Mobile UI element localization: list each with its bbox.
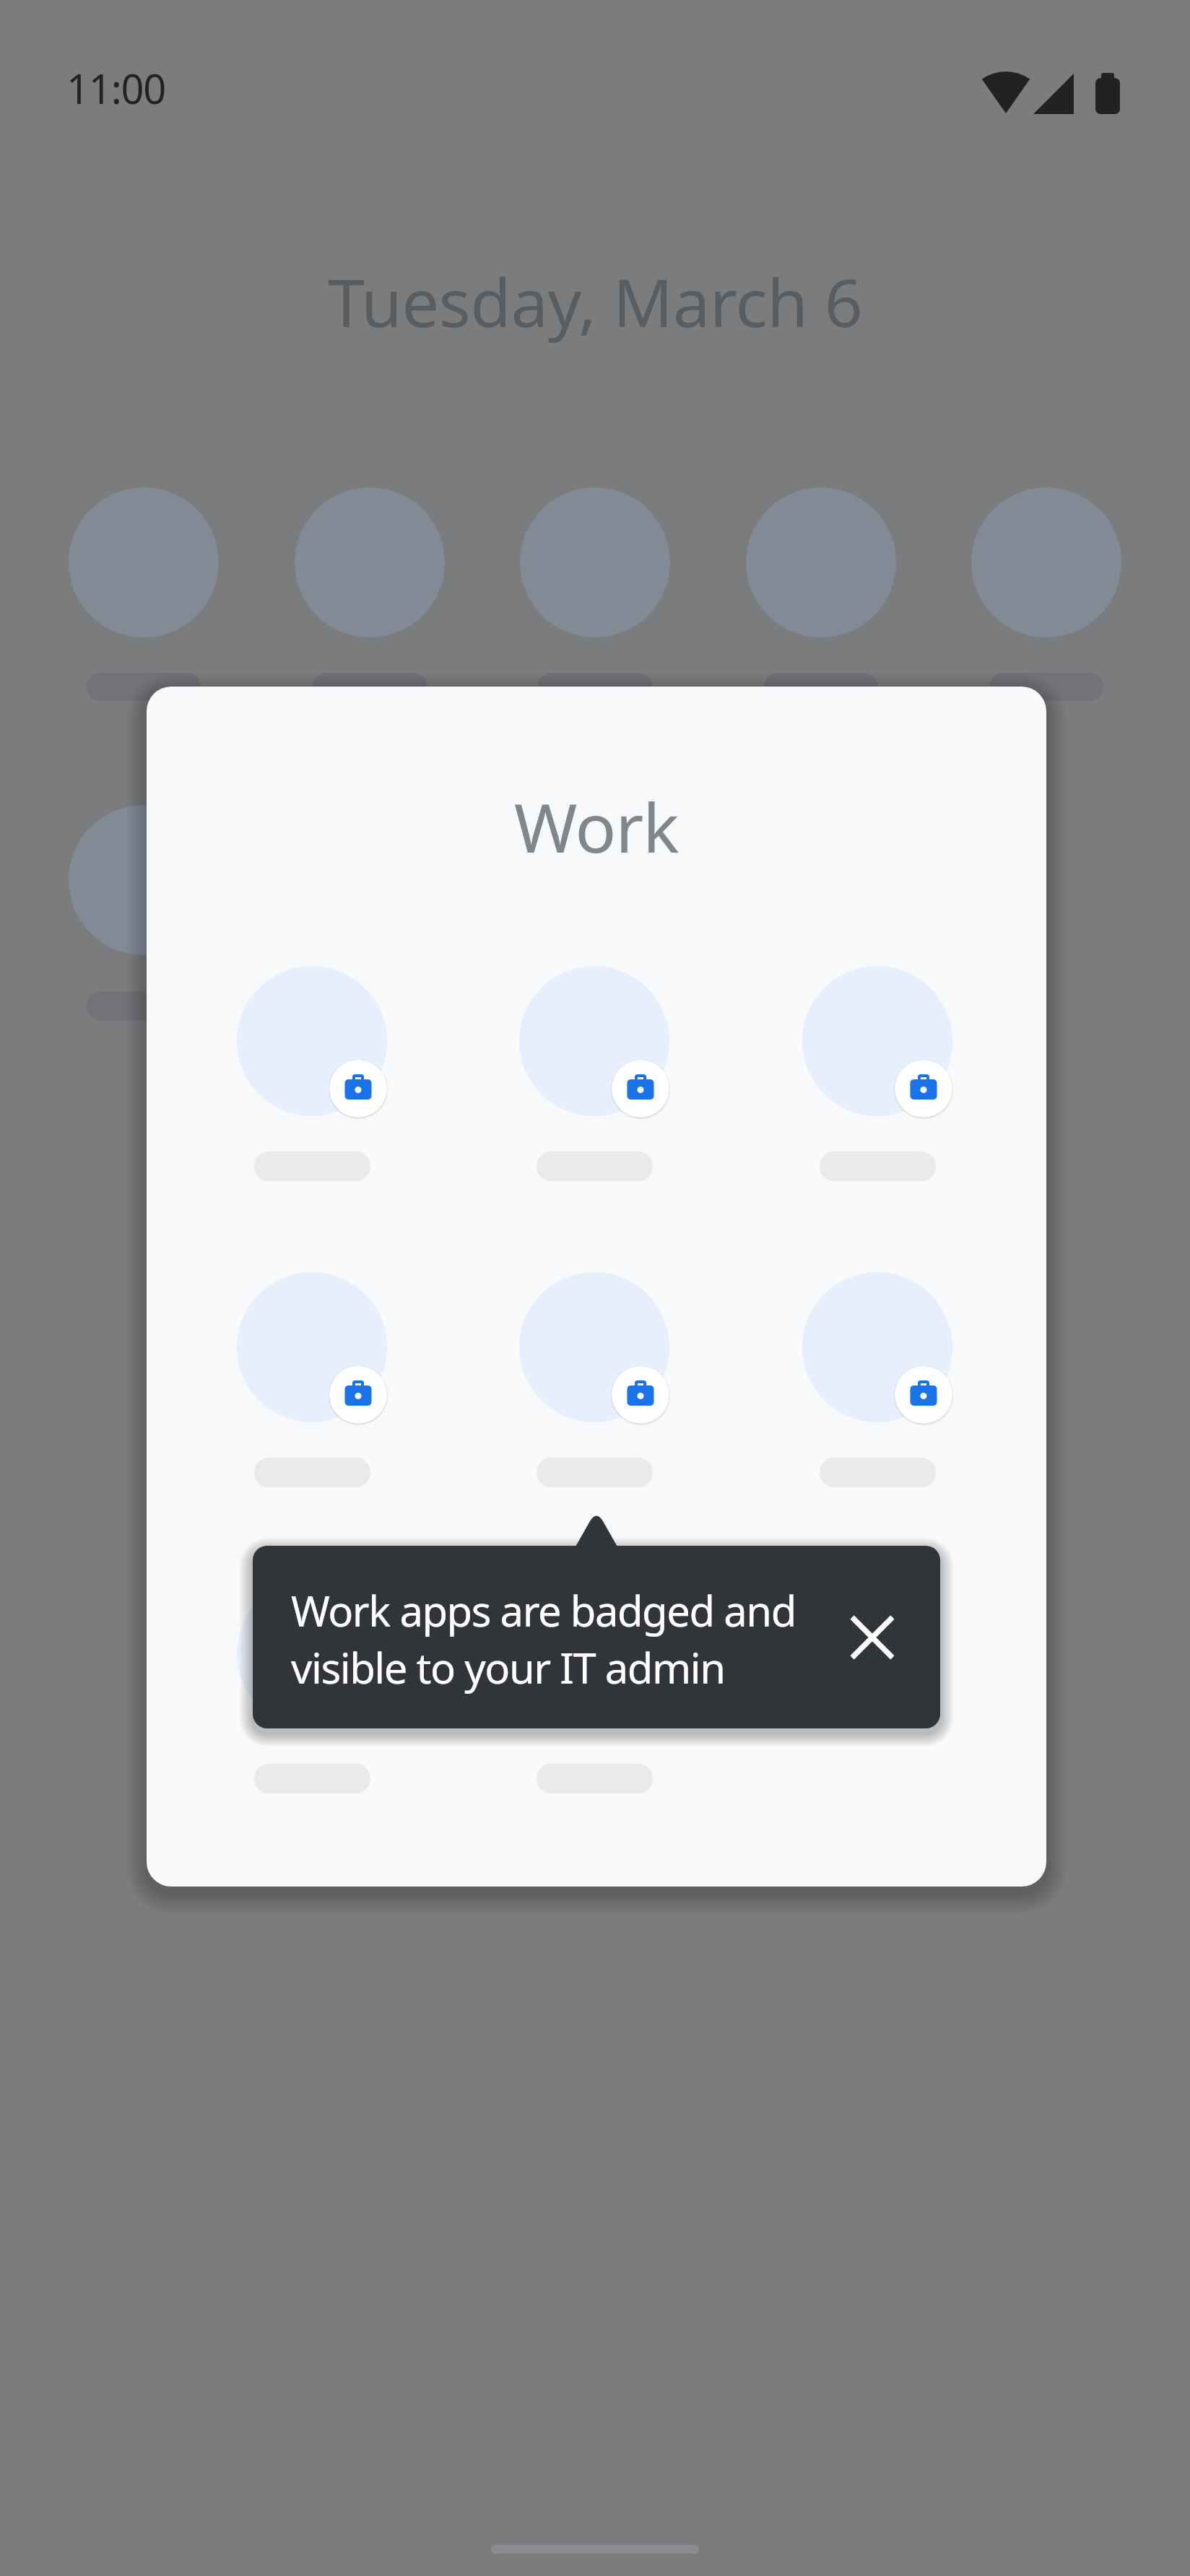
- staticText: Work apps are badged and: [291, 1582, 796, 1639]
- button[interactable]: [237, 1272, 387, 1422]
- button[interactable]: [802, 1272, 952, 1422]
- button[interactable]: [519, 1272, 669, 1422]
- staticText: Work: [514, 780, 679, 873]
- button[interactable]: [802, 966, 952, 1116]
- staticText: 11:00: [66, 61, 166, 111]
- staticText: Tuesday, March 6: [328, 256, 863, 347]
- staticText: visible to your IT admin: [291, 1639, 725, 1696]
- button[interactable]: [237, 966, 387, 1116]
- button[interactable]: [843, 1609, 901, 1666]
- button[interactable]: [519, 966, 669, 1116]
